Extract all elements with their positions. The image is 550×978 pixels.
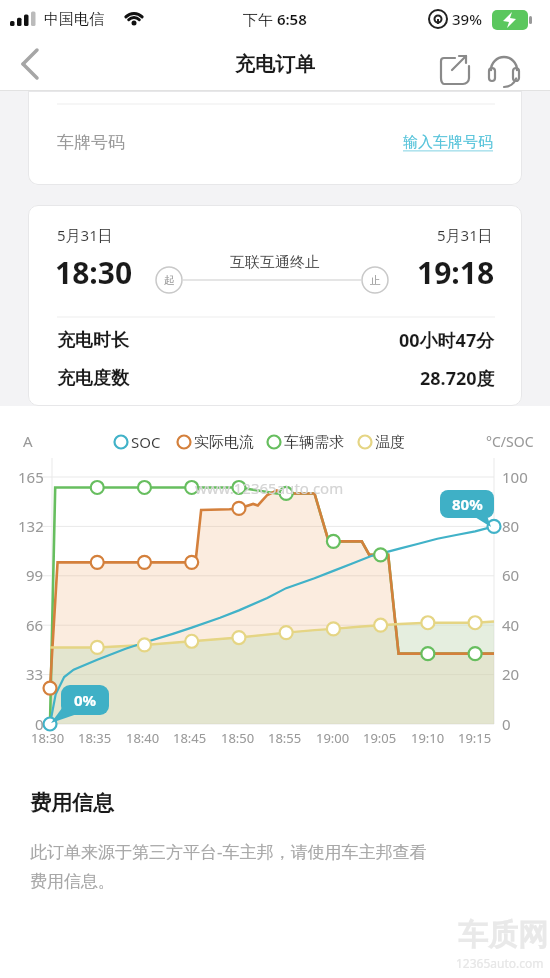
staticText: 39% bbox=[452, 9, 482, 29]
button[interactable]: 输入车牌号码 bbox=[330, 128, 493, 156]
button[interactable] bbox=[486, 50, 524, 88]
staticText: 80% bbox=[452, 494, 483, 514]
staticText: 100 bbox=[502, 467, 528, 487]
staticText: 18:45 bbox=[173, 729, 207, 747]
staticText: 止 bbox=[370, 273, 381, 287]
staticText: 0% bbox=[74, 690, 97, 710]
staticText: 18:35 bbox=[78, 729, 112, 747]
staticText: 充电度数 bbox=[57, 367, 129, 390]
staticText: 19:18 bbox=[417, 252, 495, 293]
staticText: 19:00 bbox=[316, 729, 350, 747]
staticText: 99 bbox=[26, 565, 44, 585]
staticText: 20 bbox=[502, 664, 520, 684]
staticText: 18:55 bbox=[268, 729, 302, 747]
staticText: 费用信息 bbox=[30, 790, 114, 816]
staticText: °C/SOC bbox=[486, 432, 534, 451]
staticText: 互联互通终止 bbox=[230, 253, 320, 272]
staticText: 66 bbox=[26, 615, 44, 635]
staticText: 132 bbox=[18, 516, 44, 536]
staticText: 60 bbox=[502, 565, 520, 585]
staticText: 28.720度 bbox=[420, 366, 495, 391]
staticText: 00小时47分 bbox=[399, 328, 495, 353]
staticText: 输入车牌号码 bbox=[403, 133, 493, 152]
staticText: 车牌号码 bbox=[57, 132, 125, 153]
staticText: 18:50 bbox=[221, 729, 255, 747]
staticText: 充电时长 bbox=[57, 329, 129, 352]
button[interactable] bbox=[10, 45, 50, 85]
staticText: 0 bbox=[35, 714, 44, 734]
staticText: www.12365auto.com bbox=[195, 478, 344, 498]
staticText: 18:30 bbox=[55, 252, 133, 293]
staticText: 中国电信 bbox=[44, 10, 104, 29]
staticText: 费用信息。 bbox=[30, 871, 115, 892]
staticText: 起 bbox=[164, 273, 175, 287]
staticText: 80 bbox=[502, 516, 520, 536]
staticText: 实际电流 bbox=[194, 433, 254, 452]
staticText: 5月31日 bbox=[437, 225, 493, 245]
staticText: 18:30 bbox=[31, 729, 65, 747]
staticText: 19:10 bbox=[411, 729, 445, 747]
staticText: 0 bbox=[502, 714, 511, 734]
staticText: 温度 bbox=[375, 433, 405, 452]
staticText: 下午 6:58 bbox=[243, 9, 307, 29]
staticText: 此订单来源于第三方平台-车主邦，请使用车主邦查看 bbox=[30, 840, 427, 863]
staticText: 充电订单 bbox=[235, 52, 315, 77]
staticText: 车质网 bbox=[458, 916, 548, 954]
staticText: 5月31日 bbox=[57, 225, 113, 245]
staticText: 33 bbox=[26, 664, 44, 684]
staticText: 12365auto.com bbox=[456, 955, 544, 971]
staticText: 40 bbox=[502, 615, 520, 635]
staticText: A bbox=[23, 431, 33, 451]
staticText: 19:05 bbox=[363, 729, 397, 747]
staticText: 165 bbox=[18, 467, 44, 487]
staticText: SOC bbox=[131, 432, 161, 452]
staticText: 车辆需求 bbox=[284, 433, 344, 452]
staticText: 19:15 bbox=[458, 729, 492, 747]
staticText: 18:40 bbox=[126, 729, 160, 747]
button[interactable] bbox=[436, 50, 474, 88]
